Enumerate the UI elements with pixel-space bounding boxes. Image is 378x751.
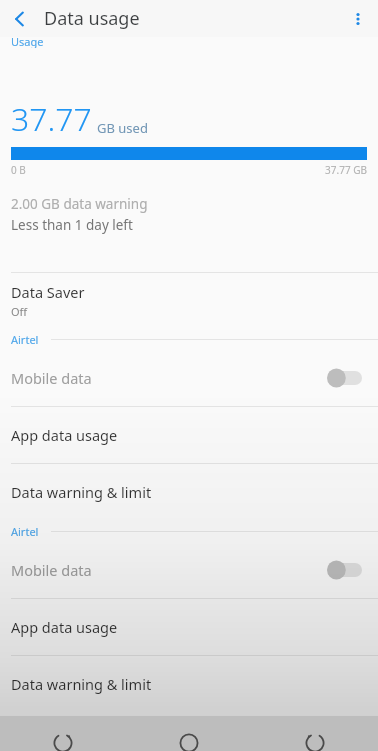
button[interactable]: Data Saver <box>0 273 378 328</box>
staticText: 37.77 <box>11 97 92 141</box>
staticText: Off <box>11 304 28 319</box>
staticText: Airtel <box>11 332 39 347</box>
staticText: Data Saver <box>11 282 85 302</box>
button[interactable]: App data usage <box>0 407 378 463</box>
button[interactable]: Home <box>126 716 252 751</box>
staticText: App data usage <box>11 425 118 445</box>
button[interactable]: Mobile data toggle, off <box>326 560 362 580</box>
button[interactable]: Data warning & limit <box>0 464 378 520</box>
staticText: Usage <box>11 34 44 48</box>
button[interactable]: Data warning & limit <box>0 656 378 712</box>
staticText: 0 B <box>11 163 26 177</box>
staticText: Mobile data <box>11 368 92 388</box>
staticText: 37.77 GB <box>325 163 367 177</box>
staticText: GB used <box>97 119 148 137</box>
button[interactable]: Back <box>252 716 378 751</box>
staticText: Data warning & limit <box>11 674 152 694</box>
staticText: 2.00 GB data warning <box>11 195 148 213</box>
button[interactable]: More options <box>338 0 378 37</box>
button[interactable]: Mobile data toggle, off <box>326 368 362 388</box>
button[interactable]: Recent apps <box>0 716 126 751</box>
button[interactable]: App data usage <box>0 599 378 655</box>
button[interactable]: Mobile data <box>0 350 378 406</box>
staticText: Data warning & limit <box>11 482 152 502</box>
staticText: Less than 1 day left <box>11 216 133 234</box>
staticText: Data usage <box>44 6 140 31</box>
staticText: Airtel <box>11 524 39 539</box>
button[interactable]: Navigate up <box>0 0 40 37</box>
button[interactable]: Mobile data <box>0 542 378 598</box>
staticText: App data usage <box>11 617 118 637</box>
staticText: Mobile data <box>11 560 92 580</box>
